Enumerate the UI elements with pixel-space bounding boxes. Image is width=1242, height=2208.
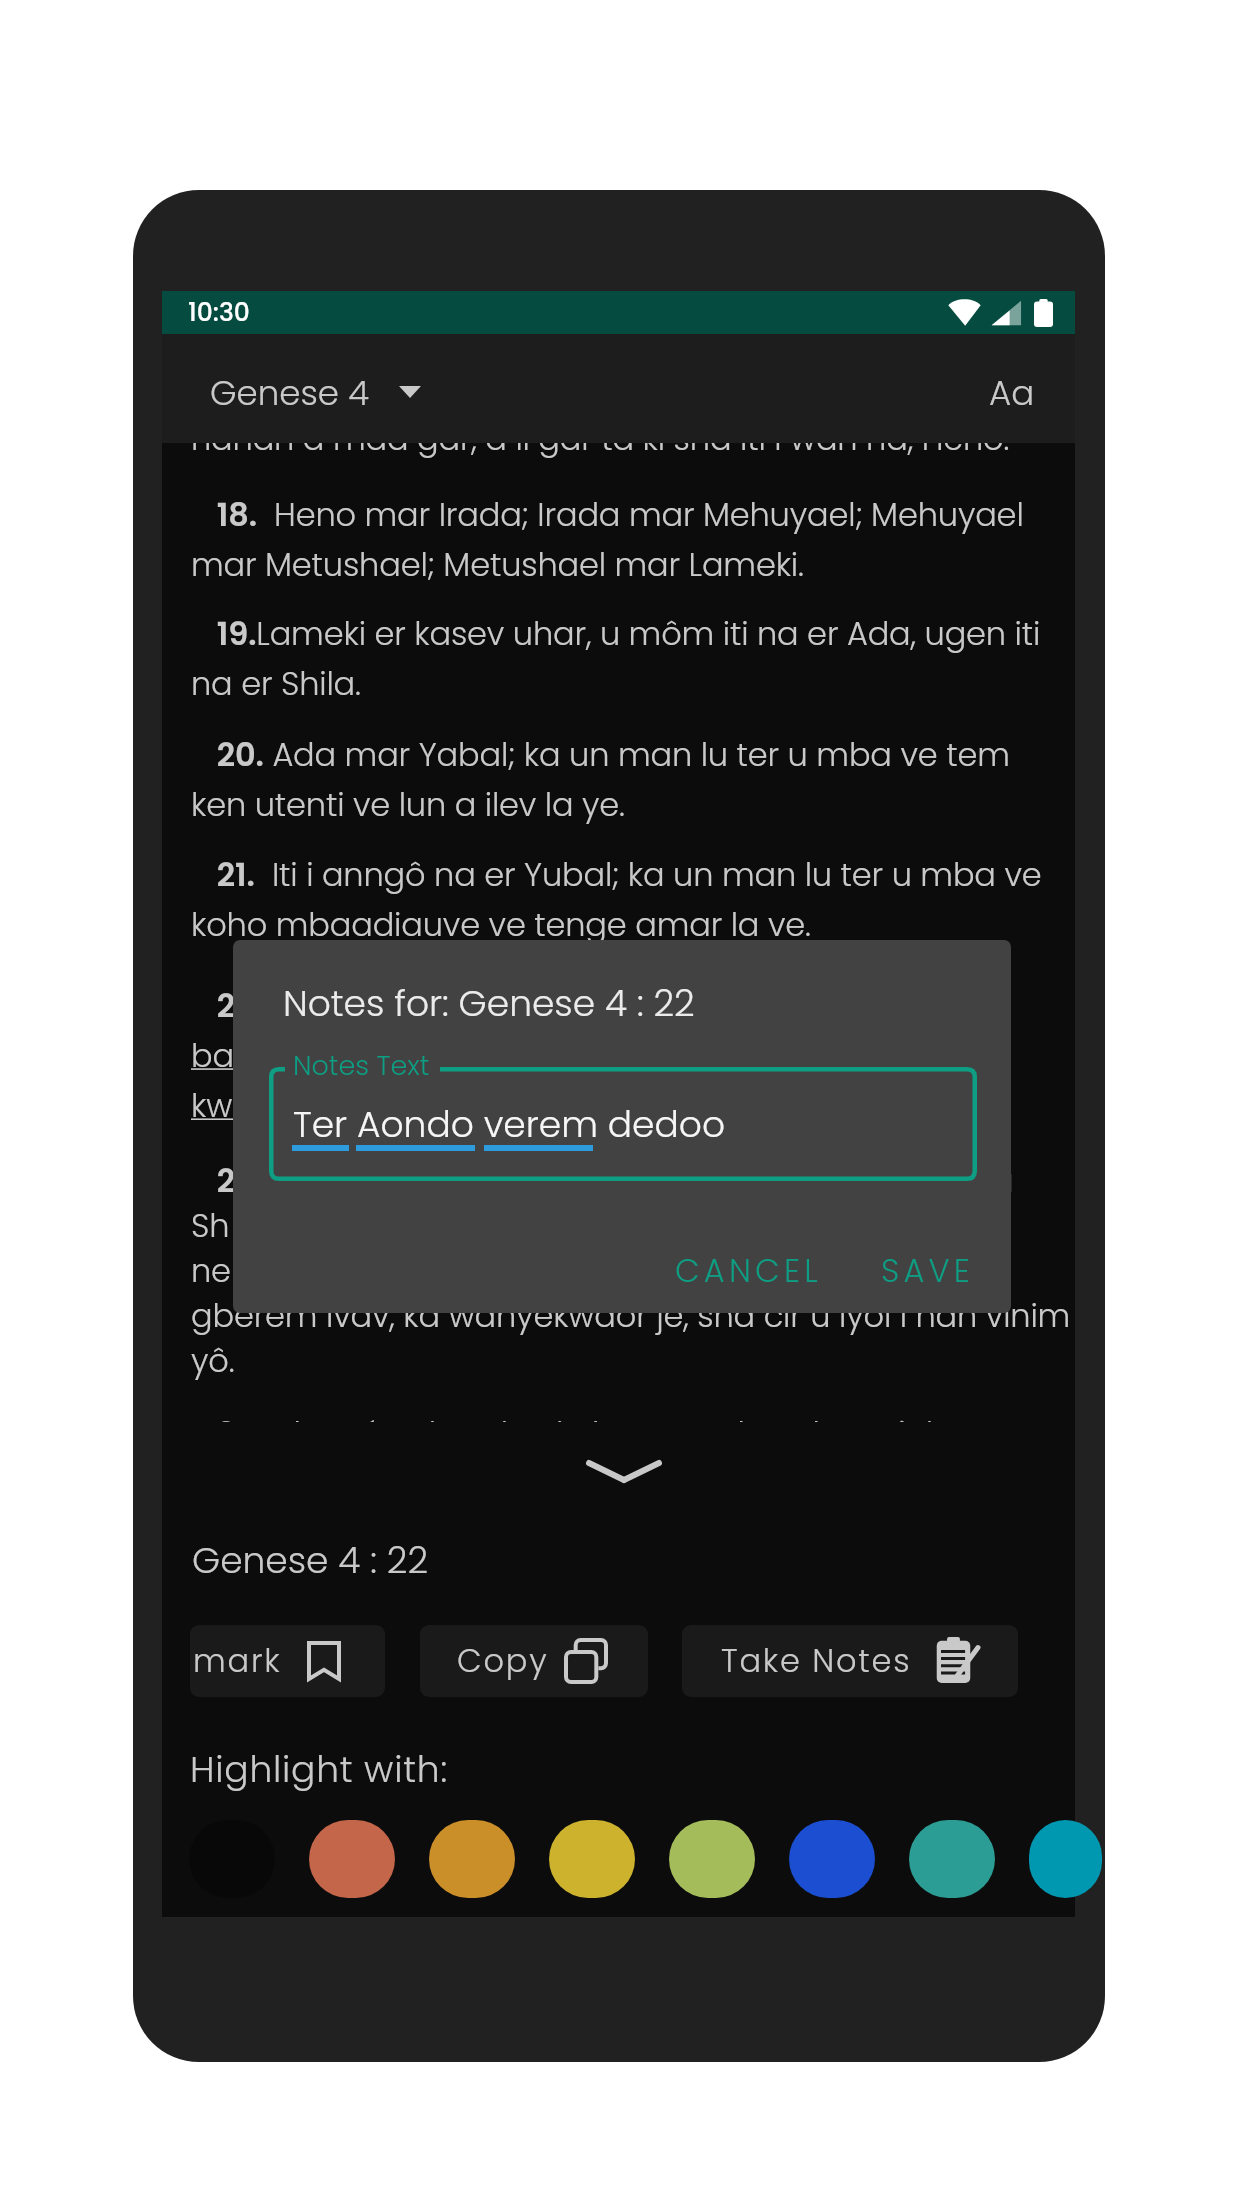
button[interactable]: Copy [420,1625,648,1697]
staticText: SAVE [881,1248,975,1293]
staticText: Copy [457,1638,549,1683]
button[interactable]: Highlight colour [789,1820,875,1898]
button[interactable]: Highlight colour [309,1820,395,1898]
staticText: Aa [989,369,1035,417]
staticText: 22. Shila kpaa mar Tubal-kain, una bunde… [191,983,1075,1128]
button[interactable]: mark [190,1625,385,1697]
staticText: Take Notes [721,1638,912,1683]
button[interactable]: SAVE [863,1236,993,1305]
staticText: Ter Aondo verem dedoo [293,1099,726,1149]
button[interactable]: Genese 4 [196,349,435,429]
button[interactable]: Highlight colour [669,1820,755,1898]
button[interactable]: Highlight colour [549,1820,635,1898]
button[interactable]: CANCEL [657,1236,840,1305]
staticText: 18. Heno mar Irada; Irada mar Mehuyael; … [191,492,1075,587]
staticText: 10:30 [188,295,250,330]
staticText: Notes for: Genese 4 : 22 [283,978,695,1028]
staticText: 24. Aluer é er ivav i Kain kwa taanker u… [191,1411,1075,1422]
staticText: Highlight with: [190,1744,448,1794]
staticText: 21. Iti i anngô na er Yubal; ka un man l… [191,852,1075,947]
button[interactable]: Text size [973,351,1051,427]
staticText: mark [193,1638,282,1683]
button[interactable]: Highlight colour [1029,1820,1102,1898]
staticText: Genese 4 [210,369,370,417]
staticText: 23. Lameki kaa a kasev nav mba er Ada ma… [191,1158,1075,1383]
staticText: 19.Lameki er kasev uhar, u môm iti na er… [191,611,1075,706]
staticText: CANCEL [675,1248,822,1293]
button[interactable]: Collapse [589,1463,659,1480]
staticText: 20. Ada mar Yabal; ka un man lu ter u mb… [191,732,1075,827]
button[interactable]: Highlight colour [909,1820,995,1898]
staticText: Notes Text [293,1047,430,1085]
staticText: Genese 4 : 22 [192,1535,428,1585]
staticText: nanan a maa gar, a ii gar ta ki sha iti … [191,443,1075,461]
button[interactable]: Highlight colour [429,1820,515,1898]
button[interactable]: Take Notes [682,1625,1018,1697]
